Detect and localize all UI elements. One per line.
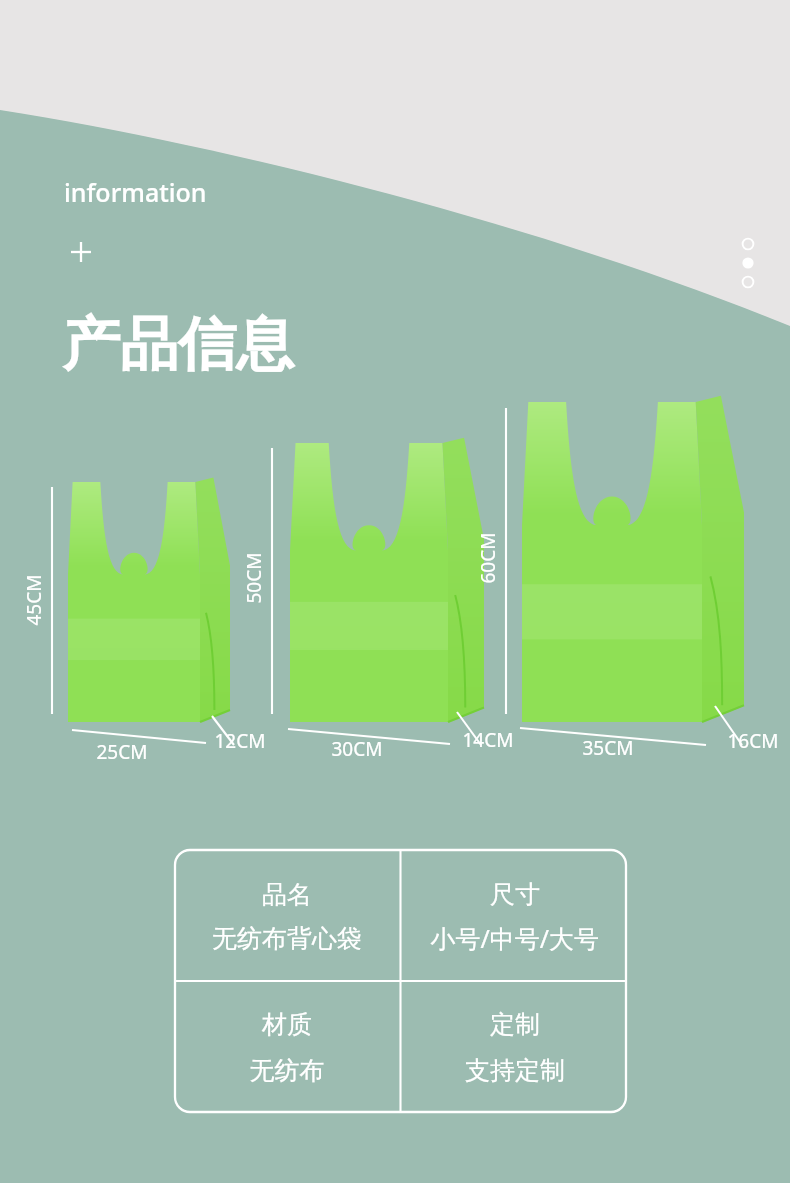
button[interactable]: Product information	[0, 0, 790, 1183]
